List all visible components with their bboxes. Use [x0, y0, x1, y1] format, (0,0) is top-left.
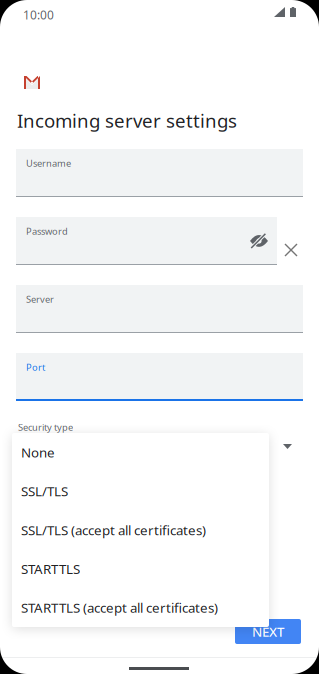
button[interactable]: SSL/TLS (accept all certificates) — [12, 511, 269, 549]
staticText: STARTTLS (accept all certificates) — [21, 599, 218, 616]
staticText: 10:00 — [23, 7, 54, 23]
button[interactable]: Hide password — [245, 227, 273, 255]
staticText: Security type — [18, 421, 73, 433]
button[interactable]: NEXT — [235, 619, 301, 644]
button[interactable]: STARTTLS — [12, 549, 269, 588]
staticText: Port — [26, 361, 45, 373]
staticText: Server — [26, 293, 54, 305]
staticText: SSL/TLS — [21, 482, 68, 500]
staticText: Incoming server settings — [17, 108, 237, 133]
staticText: Password — [26, 225, 68, 237]
staticText: STARTTLS — [21, 560, 80, 578]
button[interactable]: None — [12, 433, 269, 472]
button[interactable]: STARTTLS (accept all certificates) — [12, 588, 269, 627]
staticText: SSL/TLS (accept all certificates) — [21, 521, 206, 539]
staticText: NEXT — [252, 623, 284, 640]
button[interactable]: SSL/TLS — [12, 472, 269, 511]
button[interactable]: Clear — [279, 238, 303, 262]
staticText: Username — [26, 157, 71, 169]
staticText: None — [21, 443, 55, 461]
